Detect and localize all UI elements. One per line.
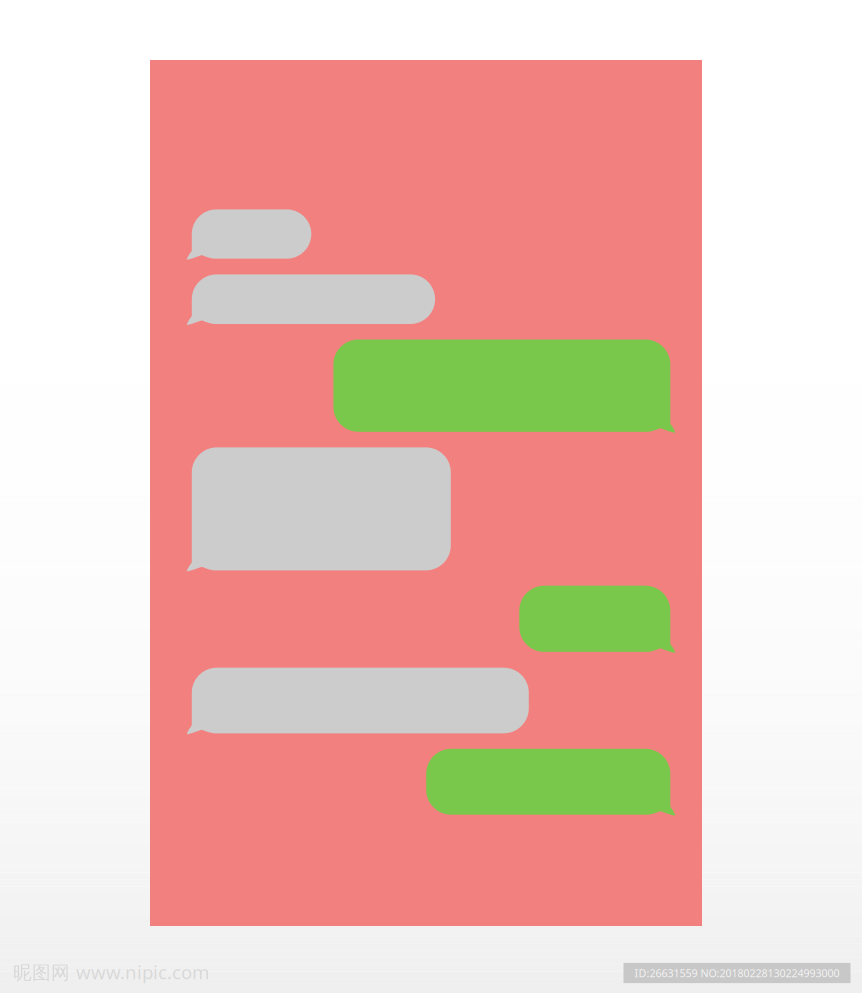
staticText: ID:26631559 NO:20180228130224993000 xyxy=(634,966,839,980)
button[interactable]: Received message 6 xyxy=(192,668,529,733)
button[interactable]: Received message 2 xyxy=(192,274,435,324)
button[interactable]: Received message 1 xyxy=(192,209,311,259)
button[interactable]: Sent message 7 xyxy=(426,749,670,815)
button[interactable]: Sent message 3 xyxy=(333,339,670,432)
staticText: 昵图网 www.nipic.com xyxy=(13,960,209,984)
button[interactable]: Sent message 5 xyxy=(519,586,670,652)
button[interactable]: Received message 4 xyxy=(192,447,451,570)
